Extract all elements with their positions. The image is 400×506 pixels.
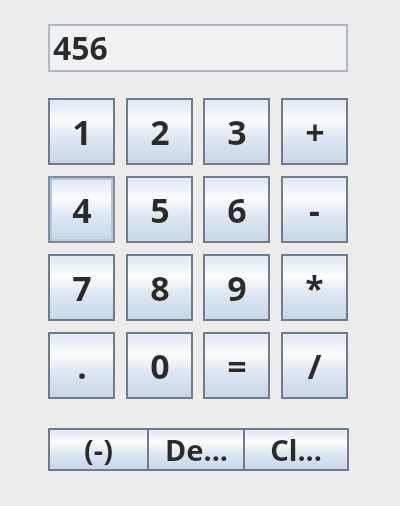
button[interactable]: * (281, 254, 348, 321)
staticText: = (227, 343, 247, 389)
button[interactable]: 5 (126, 176, 193, 243)
button[interactable]: 3 (203, 98, 270, 165)
staticText: 3 (227, 109, 247, 155)
staticText: * (305, 265, 324, 311)
button[interactable]: 0 (126, 332, 193, 399)
staticText: + (305, 109, 325, 155)
staticText: 9 (227, 265, 247, 311)
button[interactable]: / (281, 332, 348, 399)
staticText: . (77, 343, 87, 389)
button[interactable]: 4 (48, 176, 115, 243)
staticText: 4 (72, 187, 92, 233)
staticText: 5 (150, 187, 170, 233)
button[interactable]: De... (147, 428, 245, 471)
button[interactable]: + (281, 98, 348, 165)
button[interactable]: 456 (48, 24, 348, 72)
button[interactable]: (-) (48, 428, 149, 471)
staticText: 456 (53, 26, 108, 70)
staticText: / (307, 343, 322, 389)
staticText: (-) (84, 430, 113, 469)
staticText: 6 (227, 187, 247, 233)
staticText: Cl... (270, 430, 322, 469)
staticText: 0 (150, 343, 170, 389)
staticText: 2 (150, 109, 170, 155)
button[interactable]: 2 (126, 98, 193, 165)
button[interactable]: = (203, 332, 270, 399)
button[interactable]: - (281, 176, 348, 243)
staticText: De... (165, 430, 228, 469)
staticText: 8 (150, 265, 170, 311)
staticText: - (309, 187, 320, 233)
button[interactable]: 9 (203, 254, 270, 321)
staticText: 7 (72, 265, 92, 311)
button[interactable]: Cl... (243, 428, 349, 471)
button[interactable]: 8 (126, 254, 193, 321)
button[interactable]: 6 (203, 176, 270, 243)
button[interactable]: . (48, 332, 115, 399)
staticText: 1 (72, 109, 92, 155)
button[interactable]: 7 (48, 254, 115, 321)
button[interactable]: 1 (48, 98, 115, 165)
